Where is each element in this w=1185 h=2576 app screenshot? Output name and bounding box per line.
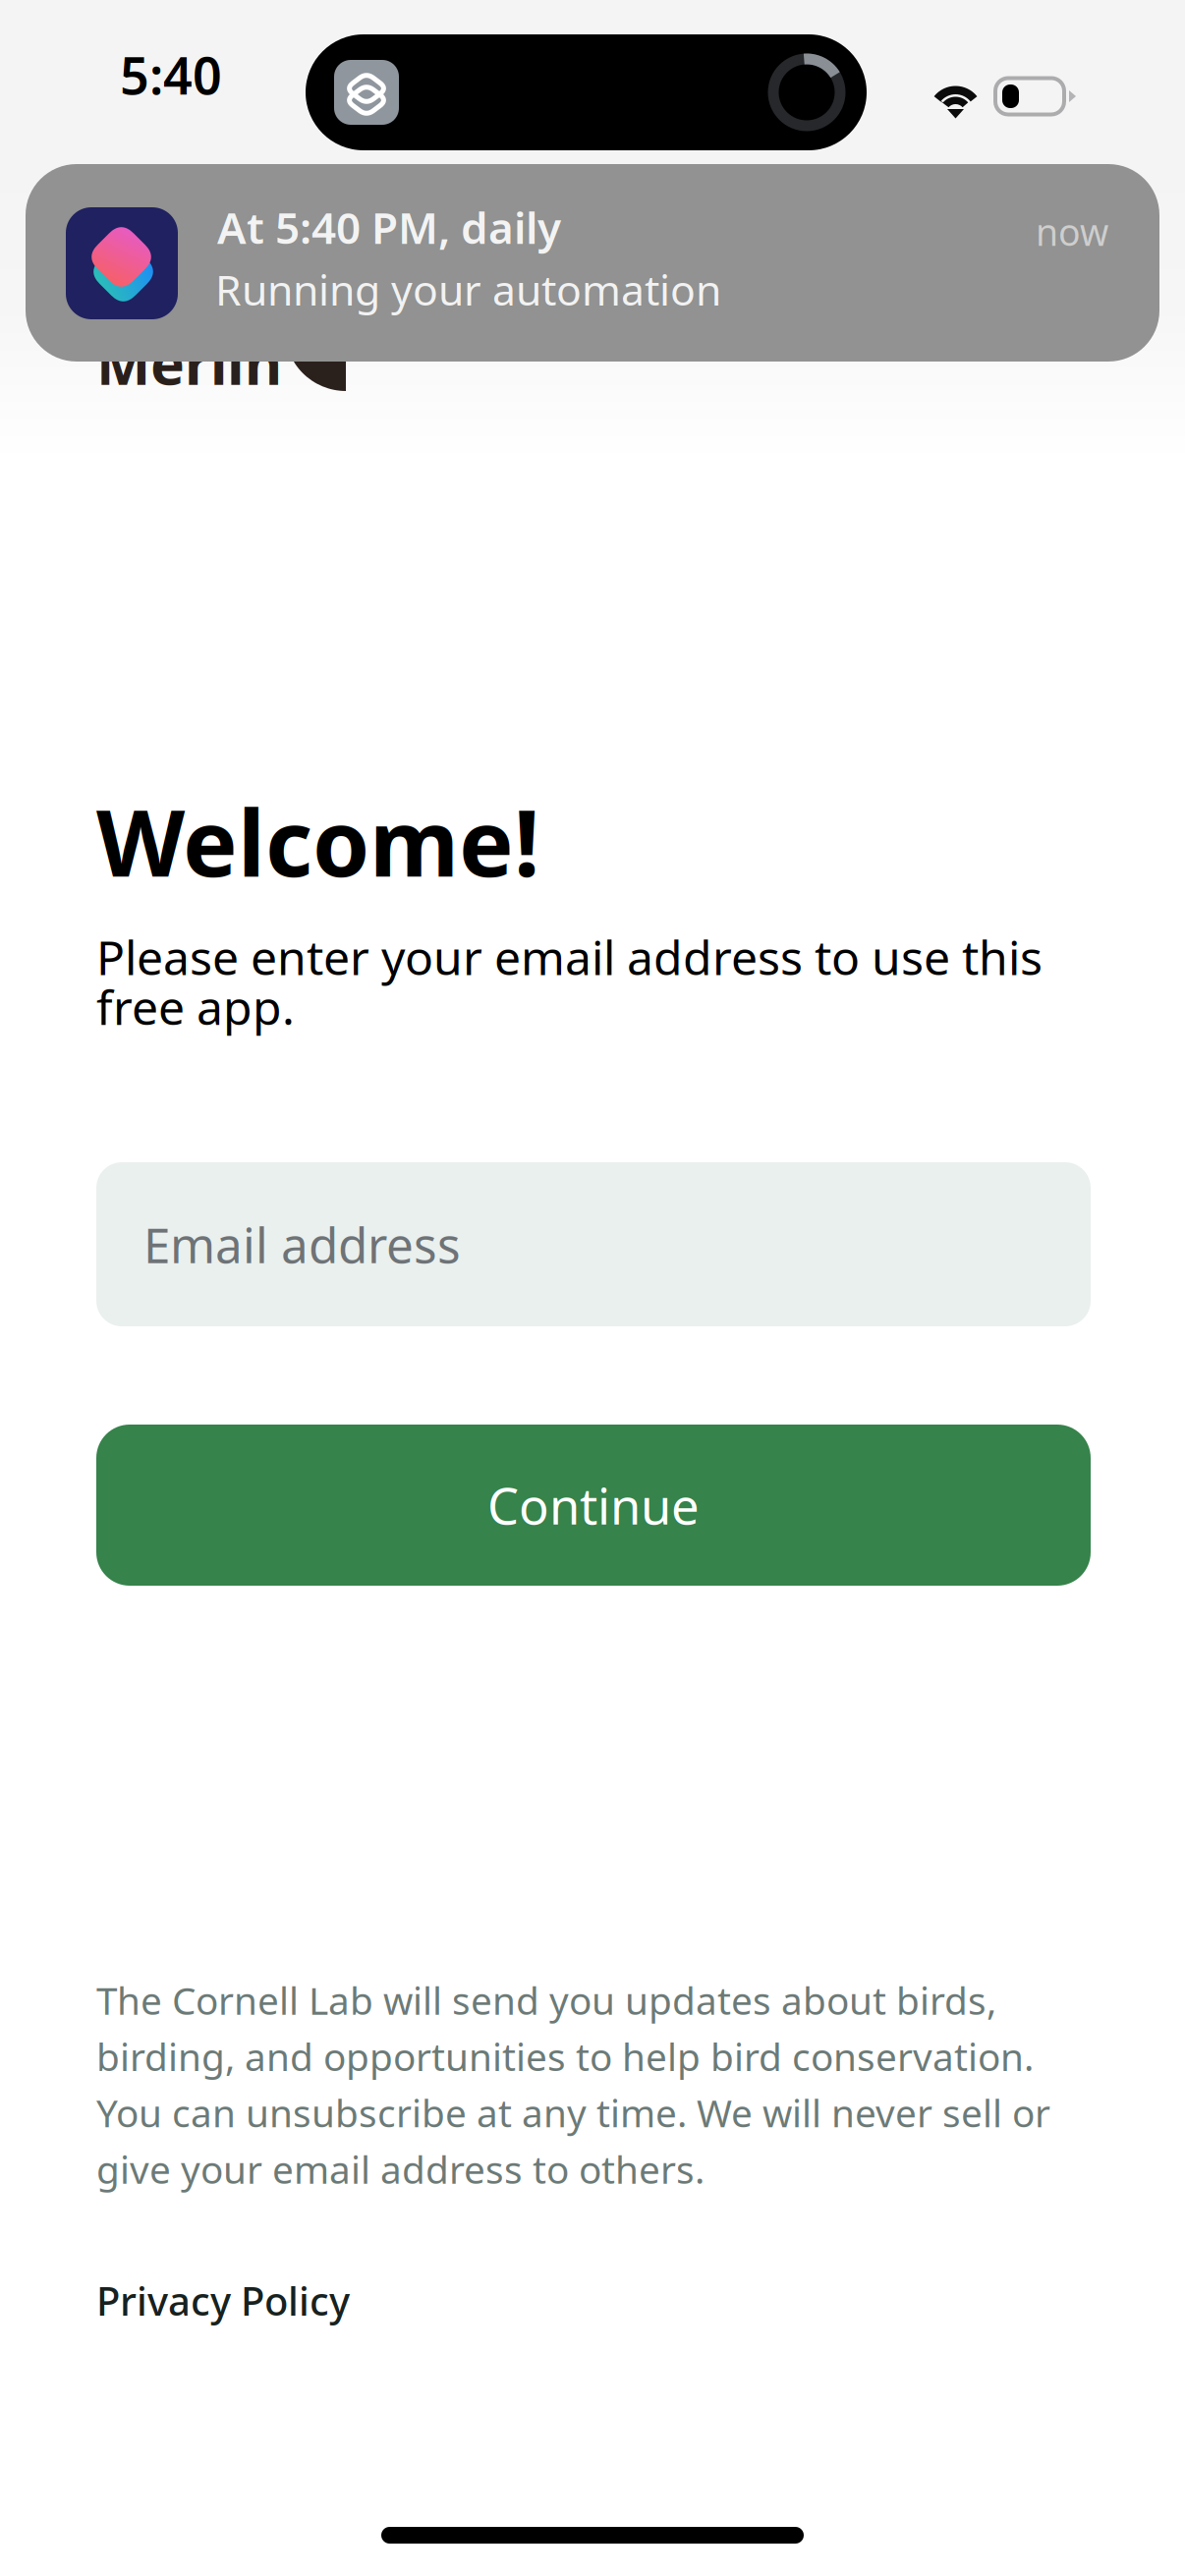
button[interactable]: At 5:40 PM, daily (26, 164, 1159, 362)
staticText: Continue (487, 1472, 700, 1538)
staticText: The Cornell Lab will send you updates ab… (96, 1975, 1050, 2194)
staticText: At 5:40 PM, daily (217, 198, 561, 256)
staticText: now (1036, 207, 1108, 256)
staticText: Running your automation (215, 261, 721, 317)
staticText: Email address (143, 1212, 461, 1276)
staticText: Welcome! (96, 780, 539, 902)
staticText: Merlin (96, 324, 282, 401)
button[interactable]: Privacy Policy (96, 2274, 350, 2327)
staticText: Please enter your email address to use t… (96, 925, 1043, 1038)
staticText: Privacy Policy (96, 2274, 350, 2327)
staticText: 5:40 (120, 41, 222, 109)
button[interactable]: Continue (96, 1425, 1091, 1586)
